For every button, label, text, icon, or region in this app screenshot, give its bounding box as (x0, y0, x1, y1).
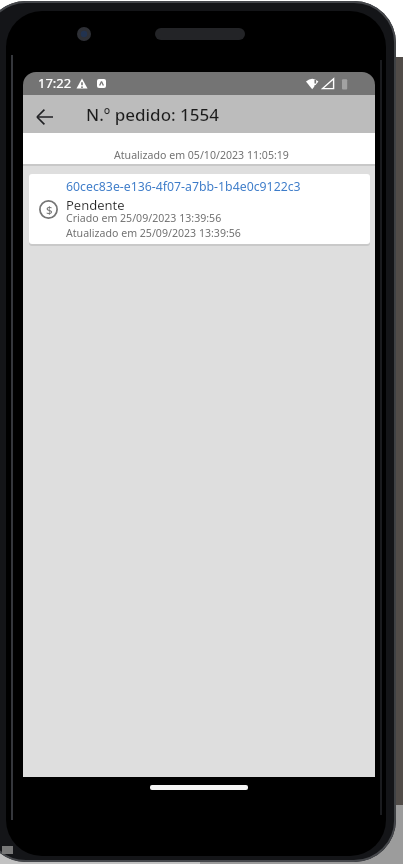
staticText: Pendente (66, 196, 125, 214)
staticText: Atualizado em 05/10/2023 11:05:19 (114, 148, 289, 162)
button[interactable]: $ (29, 174, 370, 244)
staticText: 17:22 (38, 74, 72, 92)
staticText: Criado em 25/09/2023 13:39:56 (66, 211, 222, 225)
button[interactable]: 60cec83e-e136-4f07-a7bb-1b4e0c9122c3 (66, 178, 301, 195)
staticText: $ (46, 202, 53, 218)
staticText: Atualizado em 25/09/2023 13:39:56 (66, 226, 241, 240)
button[interactable] (23, 95, 67, 133)
staticText: N.º pedido: 1554 (86, 103, 219, 126)
